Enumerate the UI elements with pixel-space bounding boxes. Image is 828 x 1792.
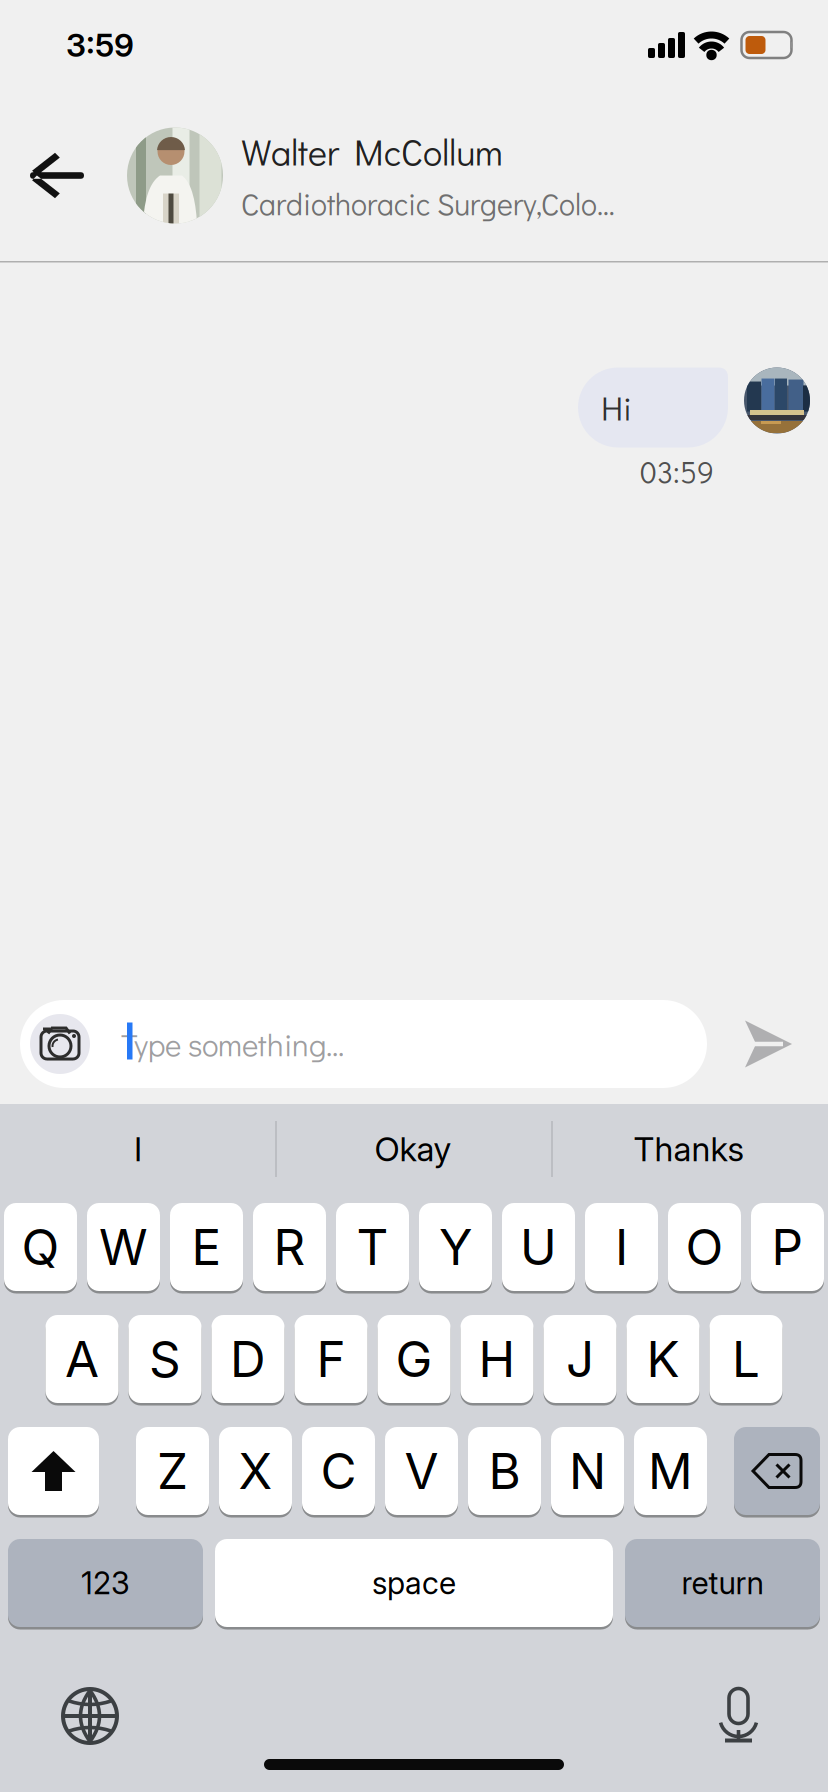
staticText: return <box>681 1565 763 1601</box>
staticText: A <box>65 1330 99 1388</box>
staticText: J <box>566 1330 594 1388</box>
staticText: Thanks <box>633 1129 744 1169</box>
staticText: S <box>149 1330 181 1388</box>
staticText: T <box>356 1218 388 1276</box>
button[interactable]: I <box>585 1202 658 1292</box>
staticText: M <box>648 1442 693 1500</box>
button[interactable]: V <box>385 1426 458 1516</box>
button[interactable]: Dictate <box>719 1688 828 1744</box>
staticText: B <box>488 1442 520 1500</box>
button[interactable]: 123 <box>8 1538 203 1628</box>
staticText: R <box>273 1218 305 1276</box>
button[interactable]: O <box>668 1202 741 1292</box>
staticText: I <box>615 1218 628 1276</box>
staticText: 03:59 <box>640 451 714 491</box>
button[interactable]: Send <box>745 1020 828 1067</box>
button[interactable]: C <box>302 1426 375 1516</box>
staticText: Hi <box>601 386 632 429</box>
staticText: 123 <box>81 1565 130 1601</box>
button[interactable]: P <box>751 1202 824 1292</box>
button[interactable]: Type something <box>20 1000 707 1088</box>
button[interactable]: L <box>709 1314 782 1404</box>
staticText: Cardiothoracic Surgery,Colo… <box>241 184 615 223</box>
button[interactable]: B <box>468 1426 541 1516</box>
button[interactable]: U <box>502 1202 575 1292</box>
button[interactable]: J <box>543 1314 616 1404</box>
button[interactable]: G <box>377 1314 450 1404</box>
button[interactable]: W <box>87 1202 160 1292</box>
staticText: L <box>732 1330 760 1388</box>
button[interactable]: K <box>626 1314 699 1404</box>
button[interactable]: Q <box>4 1202 77 1292</box>
button[interactable]: T <box>336 1202 409 1292</box>
button[interactable]: I <box>1 1100 275 1198</box>
staticText: O <box>685 1218 723 1276</box>
staticText: 3:59 <box>66 26 134 64</box>
button[interactable]: Okay <box>275 1100 551 1198</box>
staticText: N <box>569 1442 606 1500</box>
button[interactable]: Y <box>419 1202 492 1292</box>
button[interactable]: space <box>215 1538 613 1628</box>
staticText: W <box>99 1218 148 1276</box>
button[interactable]: E <box>170 1202 243 1292</box>
button[interactable]: F <box>294 1314 367 1404</box>
button[interactable]: N <box>551 1426 624 1516</box>
button[interactable]: Shift <box>8 1426 99 1516</box>
button[interactable]: A <box>45 1314 118 1404</box>
staticText: E <box>191 1218 221 1276</box>
button[interactable]: Back <box>0 148 85 203</box>
staticText: Walter McCollum <box>241 128 503 175</box>
staticText: D <box>230 1330 266 1388</box>
button[interactable]: X <box>219 1426 292 1516</box>
button[interactable]: Z <box>136 1426 209 1516</box>
button[interactable]: R <box>253 1202 326 1292</box>
staticText: H <box>478 1330 515 1388</box>
button[interactable]: S <box>128 1314 201 1404</box>
staticText: Okay <box>374 1129 451 1169</box>
button[interactable]: return <box>625 1538 820 1628</box>
staticText: I <box>134 1129 142 1169</box>
staticText: G <box>395 1330 432 1388</box>
staticText: C <box>320 1442 356 1500</box>
button[interactable]: Delete <box>734 1426 820 1516</box>
staticText: space <box>372 1565 456 1601</box>
button[interactable]: Next keyboard <box>0 1688 118 1744</box>
staticText: Q <box>21 1218 59 1276</box>
staticText: P <box>771 1218 803 1276</box>
button[interactable]: M <box>634 1426 707 1516</box>
staticText: U <box>520 1218 557 1276</box>
staticText: Type something... <box>121 1024 344 1064</box>
staticText: K <box>646 1330 679 1388</box>
staticText: Z <box>157 1442 188 1500</box>
staticText: Y <box>439 1218 472 1276</box>
button[interactable]: Thanks <box>551 1100 827 1198</box>
staticText: V <box>404 1442 438 1500</box>
staticText: X <box>238 1442 272 1500</box>
button[interactable]: H <box>460 1314 533 1404</box>
staticText: F <box>316 1330 345 1388</box>
button[interactable]: Camera <box>20 1014 90 1074</box>
button[interactable]: D <box>211 1314 284 1404</box>
